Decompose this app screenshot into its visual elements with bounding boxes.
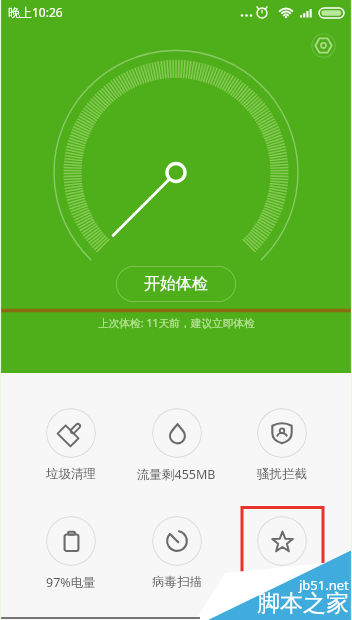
staticText: 97%电量 <box>46 574 96 591</box>
staticText: 开始体检 <box>144 274 208 294</box>
staticText: 垃圾清理 <box>46 466 96 482</box>
button[interactable] <box>229 516 334 574</box>
button[interactable]: 骚扰拦截 <box>229 408 334 482</box>
button[interactable]: 流量剩455MB <box>124 408 229 483</box>
button[interactable]: 97%电量 <box>18 516 124 591</box>
button[interactable]: 开始体检 <box>116 266 236 302</box>
button[interactable]: 垃圾清理 <box>18 408 124 482</box>
staticText: 骚扰拦截 <box>257 466 307 482</box>
staticText: 流量剩455MB <box>137 466 216 483</box>
button[interactable]: Settings <box>311 33 336 58</box>
staticText: jb51.net <box>299 576 349 594</box>
staticText: 脚本之家 <box>257 589 349 618</box>
staticText: 晚上10:26 <box>8 4 63 20</box>
button[interactable]: 病毒扫描 <box>124 516 229 590</box>
staticText: 病毒扫描 <box>152 574 202 590</box>
staticText: 上次体检: 11天前，建议立即体检 <box>98 316 255 331</box>
